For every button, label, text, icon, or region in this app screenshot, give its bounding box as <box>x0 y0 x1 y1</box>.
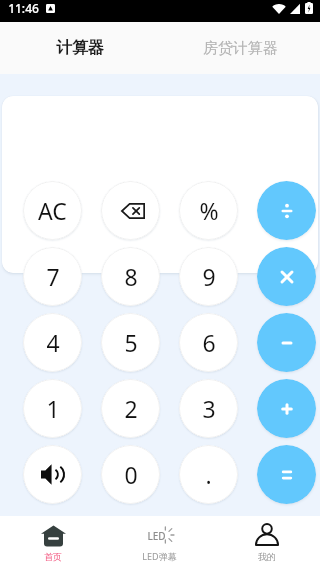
staticText: LED <box>147 529 166 543</box>
button[interactable]: % <box>179 181 238 240</box>
button[interactable]: 3 <box>179 379 238 438</box>
button[interactable]: Subtract <box>257 313 316 372</box>
button[interactable]: 房贷计算器 <box>160 22 320 74</box>
staticText: 3 <box>202 393 216 424</box>
button[interactable]: Multiply <box>257 247 316 306</box>
staticText: LED弹幕 <box>142 550 177 562</box>
staticText: 9 <box>202 261 216 292</box>
staticText: 8 <box>124 261 138 292</box>
staticText: 6 <box>202 327 216 358</box>
staticText: 0 <box>124 459 138 490</box>
button[interactable]: Delete <box>101 181 160 240</box>
button[interactable]: 0 <box>101 445 160 504</box>
button[interactable]: 1 <box>23 379 82 438</box>
button[interactable]: 首页 <box>0 516 106 568</box>
button[interactable]: LED <box>106 516 213 568</box>
button[interactable]: 5 <box>101 313 160 372</box>
button[interactable]: AC <box>23 181 82 240</box>
staticText: % <box>199 195 219 226</box>
button[interactable]: 9 <box>179 247 238 306</box>
staticText: 计算器 <box>56 38 104 58</box>
staticText: AC <box>38 195 67 226</box>
staticText: 7 <box>46 261 60 292</box>
staticText: 我的 <box>258 551 276 562</box>
button[interactable]: Sound <box>23 445 82 504</box>
staticText: 2 <box>124 393 138 424</box>
staticText: 1 <box>46 393 60 424</box>
button[interactable]: 我的 <box>213 516 320 568</box>
button[interactable]: Divide <box>257 181 316 240</box>
staticText: 房贷计算器 <box>203 39 278 58</box>
button[interactable]: 计算器 <box>0 22 160 74</box>
staticText: 11:46 <box>8 0 39 16</box>
button[interactable]: Add <box>257 379 316 438</box>
button[interactable]: 8 <box>101 247 160 306</box>
button[interactable]: 4 <box>23 313 82 372</box>
staticText: 4 <box>46 327 60 358</box>
button[interactable]: 6 <box>179 313 238 372</box>
staticText: 5 <box>124 327 138 358</box>
staticText: . <box>205 459 212 490</box>
button[interactable]: . <box>179 445 238 504</box>
staticText: 首页 <box>44 551 62 562</box>
button[interactable]: 7 <box>23 247 82 306</box>
button[interactable]: Equals <box>257 445 316 504</box>
button[interactable]: 2 <box>101 379 160 438</box>
